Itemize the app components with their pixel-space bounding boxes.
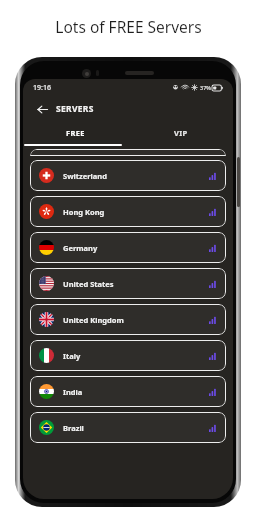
staticText: 37% [200,84,211,91]
staticText: Switzerland [63,171,107,181]
button[interactable]: United States [30,268,226,299]
button[interactable]: Switzerland [30,160,226,191]
staticText: 19:16 [33,83,51,93]
staticText: FREE [66,128,85,138]
staticText: Brazil [63,423,84,433]
button[interactable]: Back [33,100,51,118]
staticText: VIP [174,128,188,138]
button[interactable]: Italy [30,340,226,371]
button[interactable]: United Kingdom [30,304,226,335]
button[interactable]: Brazil [30,412,226,443]
button[interactable]: Germany [30,232,226,263]
staticText: SERVERS [56,103,94,115]
button[interactable]: FREE [23,121,128,144]
button[interactable]: VIP [128,121,233,144]
staticText: United Kingdom [63,315,124,325]
button[interactable]: India [30,376,226,407]
staticText: United States [63,279,114,289]
staticText: Lots of FREE Servers [55,16,202,37]
staticText: Italy [63,351,81,361]
staticText: Hong Kong [63,207,105,217]
button[interactable]: Hong Kong [30,196,226,227]
staticText: Germany [63,243,98,253]
staticText: India [63,387,83,397]
